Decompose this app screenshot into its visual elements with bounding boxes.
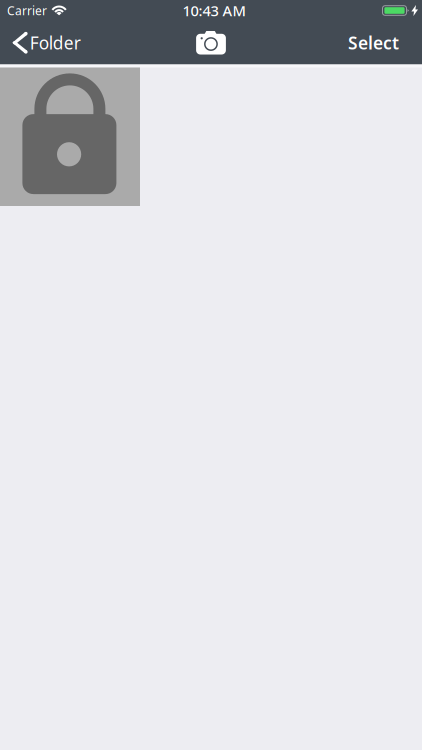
button[interactable]: Camera xyxy=(184,21,238,64)
button[interactable]: Select xyxy=(332,21,422,64)
button[interactable]: Folder xyxy=(0,21,91,64)
staticText: Folder xyxy=(30,31,81,54)
staticText: Carrier xyxy=(7,2,47,18)
button[interactable]: Locked photo xyxy=(0,67,140,206)
staticText: 10:43 AM xyxy=(182,1,245,20)
staticText: Select xyxy=(348,31,399,54)
